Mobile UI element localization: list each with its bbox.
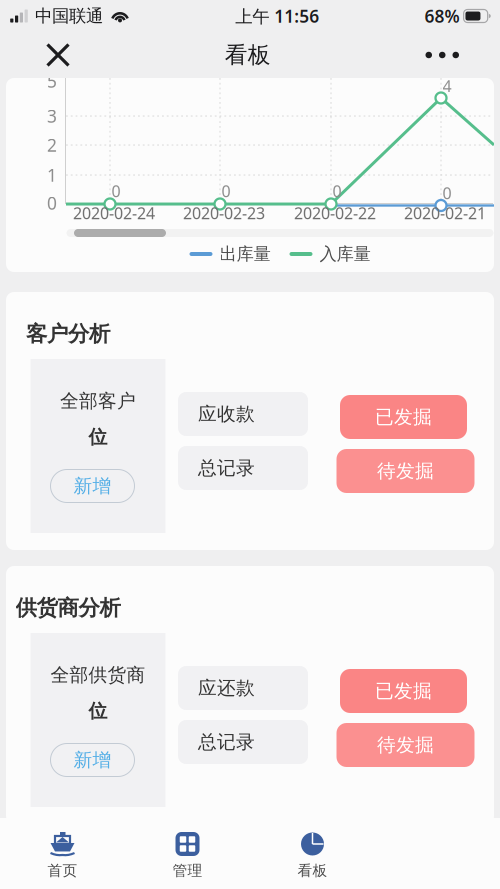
staticText: 看板 [297, 861, 327, 879]
staticText: 供货商分析 [15, 595, 120, 621]
staticText: 中国联通 [35, 5, 103, 27]
button[interactable]: 更多 [405, 32, 500, 78]
staticText: 已发掘 [375, 405, 432, 428]
button[interactable]: 待发掘 [336, 723, 474, 767]
staticText: 客户分析 [26, 321, 110, 347]
staticText: 首页 [47, 861, 77, 879]
button[interactable]: 管理 [125, 822, 250, 889]
staticText: 2020-02-24 [73, 202, 155, 224]
staticText: 3 [47, 104, 57, 127]
staticText: 0 [47, 191, 57, 214]
staticText: 上午 11:56 [235, 4, 319, 27]
staticText: 1 [47, 163, 57, 186]
button[interactable]: 应收款 [178, 392, 308, 436]
staticText: 2020-02-23 [183, 202, 265, 224]
staticText: 待发掘 [377, 733, 434, 756]
staticText: 5 [47, 69, 57, 92]
button[interactable]: 已发掘 [340, 395, 467, 439]
button[interactable]: 关闭 [0, 32, 90, 78]
button[interactable]: 已发掘 [340, 669, 467, 713]
staticText: 0 [111, 180, 120, 202]
staticText: 0 [332, 180, 341, 202]
button[interactable]: 总记录 [178, 720, 308, 764]
button[interactable]: 应还款 [178, 666, 308, 710]
staticText: 2020-02-22 [294, 202, 376, 224]
staticText: 新增 [73, 748, 111, 771]
staticText: 0 [221, 180, 230, 202]
staticText: 应还款 [198, 676, 255, 699]
staticText: 新增 [73, 474, 111, 497]
staticText: 位 [88, 699, 107, 722]
staticText: 全部供货商 [50, 663, 145, 686]
staticText: 待发掘 [377, 459, 434, 482]
staticText: 2020-02-21 [404, 202, 486, 224]
button[interactable]: 首页 [0, 822, 125, 889]
staticText: 总记录 [198, 730, 255, 753]
button[interactable]: 总记录 [178, 446, 308, 490]
staticText: 入库量 [319, 243, 370, 265]
staticText: 看板 [225, 41, 271, 69]
staticText: 管理 [172, 861, 202, 879]
staticText: 0 [442, 182, 451, 204]
staticText: 出库量 [219, 243, 270, 265]
button[interactable]: 新增 [50, 469, 134, 502]
button[interactable]: 待发掘 [336, 449, 474, 493]
staticText: 位 [88, 425, 107, 448]
staticText: 68% [424, 4, 459, 27]
staticText: 应收款 [198, 402, 255, 425]
staticText: 总记录 [198, 456, 255, 479]
staticText: 已发掘 [375, 679, 432, 702]
staticText: 2 [47, 133, 57, 156]
button[interactable]: 新增 [50, 743, 134, 776]
staticText: 全部客户 [60, 389, 136, 412]
button[interactable]: 看板 [250, 822, 375, 889]
staticText: 4 [442, 75, 451, 97]
